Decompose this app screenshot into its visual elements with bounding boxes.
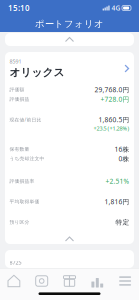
button[interactable]: 8591 xyxy=(5,52,134,85)
staticText: +2.51% xyxy=(105,177,129,186)
staticText: 平均取得単価 xyxy=(9,199,39,205)
staticText: 8725 xyxy=(9,259,21,266)
staticText: 保有数量 xyxy=(9,146,29,152)
staticText: 評価額 xyxy=(9,87,24,93)
staticText: 16株 xyxy=(114,145,129,154)
staticText: 15:10 xyxy=(8,3,30,13)
staticText: +728.0円 xyxy=(100,95,129,104)
button[interactable]: メニュー xyxy=(111,271,139,290)
staticText: 評価損益 xyxy=(9,96,29,102)
staticText: うち売却注文中 xyxy=(9,156,44,162)
staticText: オリックス xyxy=(9,66,64,79)
staticText: 29,768.0円 xyxy=(94,85,129,94)
staticText: 1,816円 xyxy=(104,197,129,206)
button[interactable]: マーケット xyxy=(83,271,111,290)
button[interactable]: 8725 xyxy=(5,250,134,268)
staticText: 評価損益率 xyxy=(9,178,34,184)
button[interactable]: 特典 xyxy=(56,271,83,290)
staticText: MS&AD xyxy=(9,267,48,281)
staticText: 1,860.5円 xyxy=(98,115,129,124)
button[interactable]: 折りたたむ xyxy=(5,227,134,244)
button[interactable]: 資産 xyxy=(28,271,56,290)
staticText: +23.5 (+1.28%) xyxy=(93,125,129,132)
staticText: 0株 xyxy=(118,154,129,163)
staticText: 4G xyxy=(109,4,120,12)
staticText: ポートフォリオ xyxy=(35,18,104,30)
button[interactable]: 前の銘柄を折りたたむ xyxy=(5,33,134,46)
staticText: 8591 xyxy=(9,58,21,65)
staticText: 特定 xyxy=(115,218,129,226)
button[interactable]: ホーム xyxy=(0,271,28,290)
staticText: 現在値/前日比 xyxy=(9,116,41,123)
staticText: 預り区分 xyxy=(9,219,29,225)
